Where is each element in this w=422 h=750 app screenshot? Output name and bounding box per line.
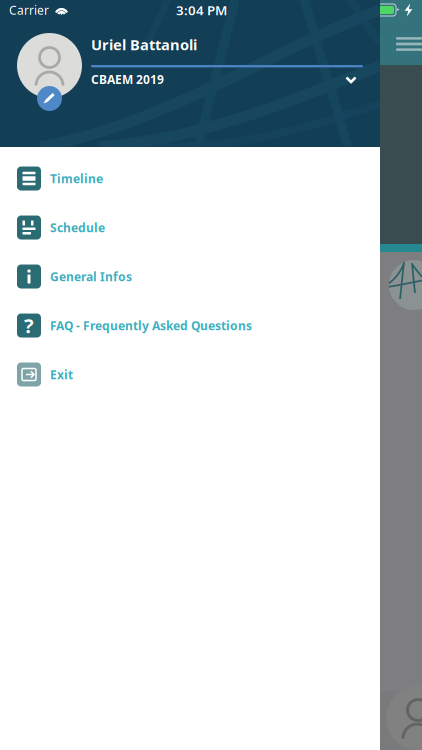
- button[interactable]: Edit profile: [37, 86, 62, 111]
- button[interactable]: General Infos: [0, 252, 380, 301]
- staticText: Uriel Battanoli: [91, 35, 197, 54]
- button[interactable]: Change event: [334, 65, 368, 95]
- staticText: Timeline: [50, 170, 103, 186]
- button[interactable]: Timeline: [0, 154, 380, 203]
- staticText: ?: [24, 312, 34, 339]
- staticText: General Infos: [50, 268, 132, 284]
- staticText: Carrier: [9, 2, 49, 18]
- staticText: Schedule: [50, 219, 105, 235]
- button[interactable]: Menu: [378, 29, 422, 59]
- button[interactable]: Exit: [0, 350, 380, 399]
- staticText: 3:04 PM: [176, 1, 227, 19]
- staticText: Exit: [50, 366, 73, 382]
- staticText: CBAEM 2019: [91, 71, 164, 87]
- staticText: FAQ - Frequently Asked Questions: [50, 317, 252, 333]
- button[interactable]: Schedule: [0, 203, 380, 252]
- button[interactable]: ?: [0, 301, 380, 350]
